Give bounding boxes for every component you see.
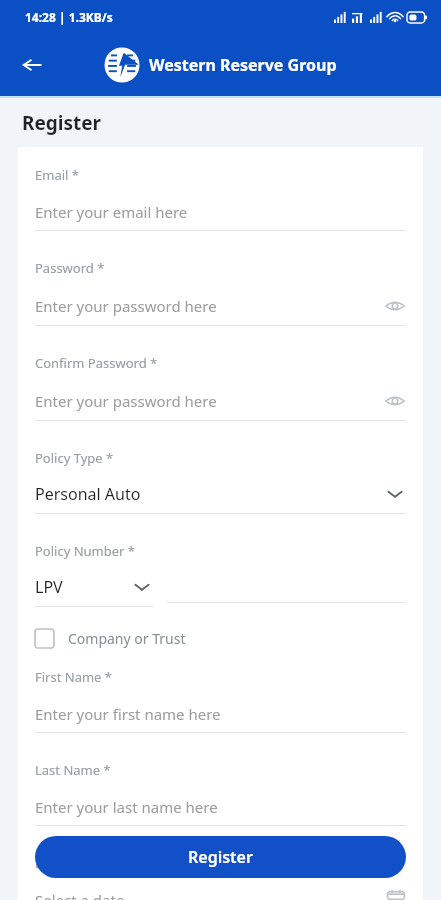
button[interactable]: Register [35, 836, 406, 878]
staticText: Select a date [35, 890, 125, 900]
button[interactable]: LPV [35, 576, 153, 607]
staticText: Last Name * [35, 761, 111, 779]
staticText: 14:28 | 1.3KB/s [25, 9, 113, 25]
button[interactable]: Back [12, 45, 52, 85]
staticText: Enter your last name here [35, 797, 218, 817]
staticText: Date of Birth * [35, 854, 124, 872]
staticText: Enter your password here [35, 296, 217, 316]
button[interactable]: Confirm Password * [35, 354, 406, 449]
staticText: Personal Auto [35, 483, 141, 505]
button[interactable]: Company or Trust [35, 629, 406, 648]
staticText: Enter your email here [35, 202, 188, 222]
button[interactable]: First Name * [35, 668, 406, 761]
staticText: Email * [35, 166, 79, 184]
staticText: Confirm Password * [35, 354, 158, 372]
staticText: First Name * [35, 668, 112, 686]
staticText: Enter your password here [35, 391, 217, 411]
button[interactable]: Last Name * [35, 761, 406, 854]
staticText: LPV [35, 576, 63, 598]
other: Open policy prefix list [131, 576, 153, 598]
staticText: Policy Type * [35, 449, 114, 467]
button[interactable]: Policy Type * [35, 449, 406, 542]
other: Open Policy Type * list [384, 483, 406, 505]
other: Show password [384, 295, 406, 317]
staticText: Register [188, 846, 253, 868]
button[interactable]: Date of Birth * [35, 854, 406, 900]
button[interactable] [167, 580, 406, 603]
staticText: Register [22, 110, 102, 136]
staticText: Enter your first name here [35, 704, 221, 724]
button[interactable]: Email * [35, 166, 406, 259]
staticText: Company or Trust [68, 629, 186, 648]
other: Show password [384, 390, 406, 412]
staticText: Password * [35, 259, 105, 277]
other: Pick date [386, 890, 406, 900]
staticText: Western Reserve Group [149, 54, 337, 76]
button[interactable]: Password * [35, 259, 406, 354]
staticText: Policy Number * [35, 542, 135, 560]
